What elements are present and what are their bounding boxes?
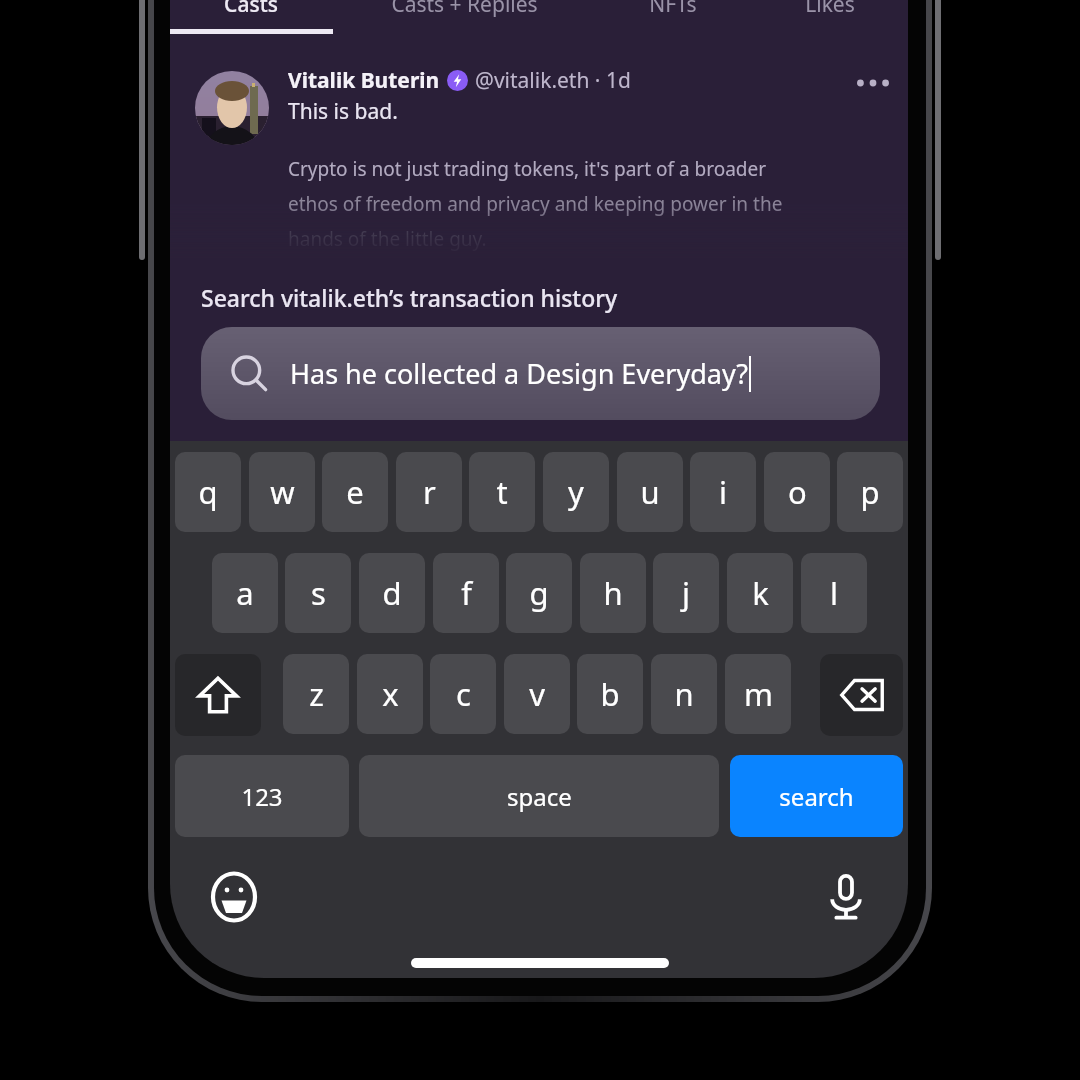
- button[interactable]: y: [543, 452, 609, 532]
- staticText: q: [198, 471, 218, 513]
- button[interactable]: Shift: [175, 654, 261, 736]
- button[interactable]: c: [430, 654, 496, 734]
- staticText: Casts + Replies: [391, 0, 538, 19]
- staticText: Search vitalik.eth’s transaction history: [201, 282, 618, 313]
- staticText: o: [788, 471, 807, 513]
- staticText: a: [236, 572, 254, 614]
- button[interactable]: Voice input: [818, 869, 874, 925]
- button[interactable]: p: [837, 452, 903, 532]
- staticText: search: [779, 780, 854, 813]
- button[interactable]: Casts + Replies: [369, 0, 559, 28]
- button[interactable]: k: [727, 553, 793, 633]
- button[interactable]: o: [764, 452, 830, 532]
- button[interactable]: s: [285, 553, 351, 633]
- staticText: This is bad.: [288, 97, 398, 126]
- button[interactable]: t: [469, 452, 535, 532]
- staticText: n: [674, 673, 694, 715]
- staticText: s: [311, 572, 326, 614]
- staticText: l: [830, 572, 838, 614]
- staticText: t: [496, 471, 508, 513]
- staticText: p: [860, 471, 880, 513]
- button[interactable]: j: [653, 553, 719, 633]
- staticText: d: [382, 572, 402, 614]
- button[interactable]: f: [433, 553, 499, 633]
- button[interactable]: v: [504, 654, 570, 734]
- staticText: u: [640, 471, 660, 513]
- staticText: @vitalik.eth · 1d: [475, 66, 631, 95]
- button[interactable]: n: [651, 654, 717, 734]
- staticText: i: [719, 471, 727, 513]
- staticText: h: [603, 572, 623, 614]
- staticText: y: [568, 471, 584, 513]
- button[interactable]: space: [359, 755, 719, 837]
- button[interactable]: g: [506, 553, 572, 633]
- button[interactable]: z: [283, 654, 349, 734]
- staticText: hands of the little guy.: [288, 226, 487, 252]
- button[interactable]: w: [249, 452, 315, 532]
- staticText: g: [529, 572, 549, 614]
- button[interactable]: Likes: [735, 0, 925, 28]
- button[interactable]: l: [801, 553, 867, 633]
- staticText: c: [456, 673, 471, 715]
- staticText: z: [309, 673, 324, 715]
- staticText: x: [382, 673, 399, 715]
- staticText: k: [752, 572, 769, 614]
- staticText: space: [507, 780, 572, 813]
- staticText: f: [461, 572, 472, 614]
- staticText: ethos of freedom and privacy and keeping…: [288, 191, 783, 217]
- button[interactable]: Has he collected a Design Everyday?: [201, 327, 880, 420]
- button[interactable]: a: [212, 553, 278, 633]
- button[interactable]: search: [730, 755, 903, 837]
- button[interactable]: More options: [848, 58, 898, 108]
- button[interactable]: d: [359, 553, 425, 633]
- staticText: b: [600, 673, 620, 715]
- staticText: Has he collected a Design Everyday?: [290, 355, 749, 392]
- button[interactable]: b: [577, 654, 643, 734]
- button[interactable]: i: [690, 452, 756, 532]
- button[interactable]: e: [322, 452, 388, 532]
- button[interactable]: Emoji: [206, 869, 262, 925]
- staticText: 123: [241, 780, 283, 813]
- staticText: w: [270, 471, 295, 513]
- button[interactable]: 123: [175, 755, 349, 837]
- button[interactable]: Casts: [156, 0, 346, 28]
- button[interactable]: h: [580, 553, 646, 633]
- button[interactable]: NFTs: [578, 0, 768, 28]
- staticText: Casts: [224, 0, 278, 19]
- button[interactable]: q: [175, 452, 241, 532]
- button[interactable]: x: [357, 654, 423, 734]
- button[interactable]: Backspace: [820, 654, 903, 736]
- staticText: e: [346, 471, 364, 513]
- button[interactable]: m: [725, 654, 791, 734]
- staticText: NFTs: [649, 0, 697, 19]
- button[interactable]: u: [617, 452, 683, 532]
- staticText: m: [744, 673, 773, 715]
- staticText: Crypto is not just trading tokens, it's …: [288, 156, 767, 182]
- staticText: Vitalik Buterin: [288, 66, 440, 95]
- staticText: v: [529, 673, 545, 715]
- staticText: Likes: [805, 0, 855, 19]
- staticText: r: [423, 471, 436, 513]
- staticText: j: [682, 572, 690, 614]
- button[interactable]: r: [396, 452, 462, 532]
